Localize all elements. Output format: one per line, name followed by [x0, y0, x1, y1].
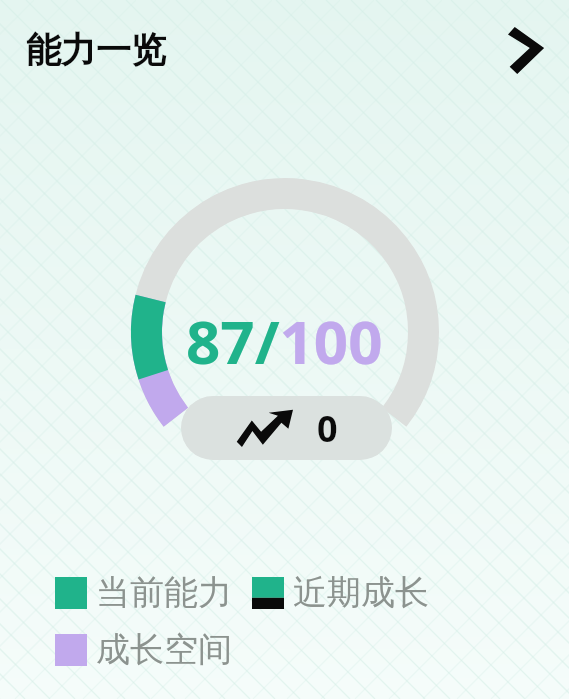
staticText: 成长空间: [96, 628, 232, 671]
staticText: 0: [317, 404, 338, 453]
staticText: 近期成长: [293, 571, 429, 614]
button[interactable]: 查看全部: [508, 24, 550, 76]
staticText: 87/100: [186, 300, 383, 382]
button[interactable]: 0: [181, 396, 392, 460]
staticText: 能力一览: [26, 28, 166, 72]
staticText: 当前能力: [96, 571, 232, 614]
